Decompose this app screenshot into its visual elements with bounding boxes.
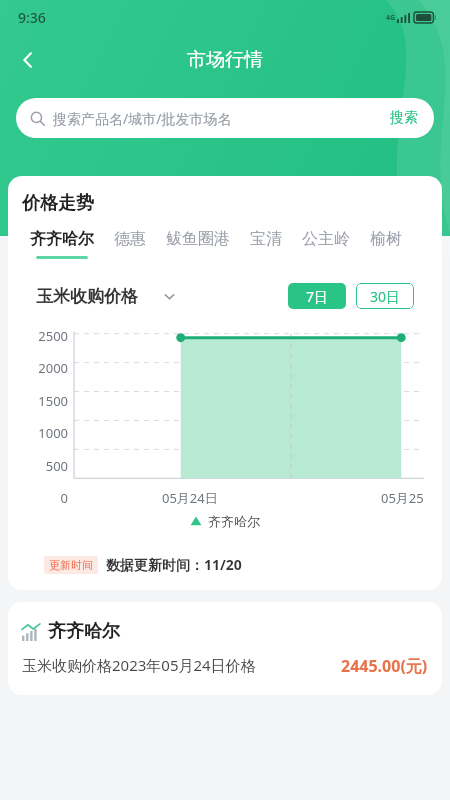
staticText: 宝清: [250, 229, 282, 249]
staticText: 搜索: [390, 109, 418, 127]
staticText: 齐齐哈尔: [30, 229, 94, 249]
staticText: 2445.00(元): [341, 655, 428, 677]
staticText: 公主岭: [302, 229, 350, 249]
button[interactable]: 搜索产品名/城市/批发市场名: [16, 98, 434, 138]
staticText: 2000: [38, 359, 68, 377]
staticText: 榆树: [370, 229, 402, 249]
button[interactable]: 玉米收购价格: [36, 286, 175, 307]
button[interactable]: 宝清: [240, 229, 292, 259]
staticText: 05月25: [381, 489, 424, 507]
staticText: 1000: [38, 424, 68, 442]
staticText: 500: [45, 457, 68, 475]
button[interactable]: 德惠: [104, 229, 156, 259]
staticText: 市场行情: [187, 48, 263, 72]
staticText: 9:36: [18, 8, 46, 27]
button[interactable]: 齐齐哈尔: [8, 602, 442, 695]
staticText: 4G: [386, 13, 396, 23]
staticText: 搜索产品名/城市/批发市场名: [53, 109, 390, 128]
staticText: 玉米收购价格2023年05月24日价格: [22, 655, 256, 675]
staticText: 齐齐哈尔: [208, 513, 260, 529]
staticText: 0: [60, 489, 68, 507]
button[interactable]: Back: [6, 38, 50, 82]
button[interactable]: 30日: [356, 283, 414, 309]
button[interactable]: 齐齐哈尔: [20, 229, 104, 259]
staticText: 7日: [306, 287, 329, 306]
button[interactable]: 鲅鱼圈港: [156, 229, 240, 259]
button[interactable]: 公主岭: [292, 229, 360, 259]
button[interactable]: 榆树: [360, 229, 412, 259]
staticText: 05月24日: [162, 489, 218, 507]
staticText: 数据更新时间：11/20: [106, 555, 242, 574]
staticText: 玉米收购价格: [36, 286, 138, 307]
staticText: 1500: [38, 392, 68, 410]
staticText: 德惠: [114, 229, 146, 249]
staticText: 更新时间: [49, 558, 93, 572]
button[interactable]: 7日: [288, 283, 346, 309]
staticText: 2500: [38, 327, 68, 345]
staticText: 鲅鱼圈港: [166, 229, 230, 249]
button[interactable]: 搜索: [390, 109, 418, 127]
staticText: 齐齐哈尔: [48, 620, 120, 643]
staticText: 价格走势: [22, 192, 94, 215]
staticText: 30日: [370, 287, 401, 306]
